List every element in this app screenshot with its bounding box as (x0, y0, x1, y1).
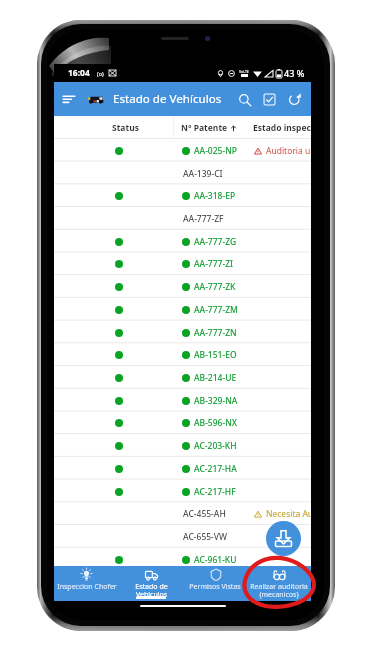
staticText: AA-777-ZI (194, 258, 234, 270)
staticText: 43 % (284, 67, 305, 79)
staticText: AA-025-NP (194, 145, 237, 157)
button[interactable]: Actualizar (282, 87, 307, 112)
staticText: AA-777-ZM (194, 304, 238, 316)
button[interactable]: AC-203-KH (54, 434, 311, 457)
staticText: (o) (97, 70, 104, 77)
staticText: AC-217-HF (194, 486, 236, 498)
staticText: AA-777-ZG (194, 236, 237, 248)
staticText: Status (112, 122, 139, 134)
button[interactable]: AA-777-ZF (54, 207, 311, 230)
staticText: AA-777-ZK (194, 281, 236, 293)
button[interactable]: Estado de Vehiculos (119, 566, 183, 601)
staticText: 16:04 (68, 67, 90, 79)
button[interactable]: AC-217-HA (54, 457, 311, 480)
button[interactable]: AB-151-EO (54, 343, 311, 366)
staticText: AA-139-CI (183, 168, 223, 180)
button[interactable]: AA-777-ZI (54, 252, 311, 275)
button[interactable]: AA-318-EP (54, 184, 311, 207)
button[interactable]: Permisos Vistas (183, 566, 247, 601)
button[interactable]: Inspeccion Chofer (54, 566, 119, 601)
staticText: Estado de Vehiculos (135, 582, 168, 599)
button[interactable]: AA-139-CI (54, 162, 311, 185)
button[interactable]: AC-655-VW (54, 525, 311, 548)
staticText: Estado de Vehículos (113, 91, 222, 107)
staticText: AB-596-NX (194, 417, 237, 429)
staticText: AB-214-UE (194, 372, 237, 384)
staticText: AC-655-VW (183, 531, 228, 543)
staticText: AC-455-AH (183, 508, 226, 520)
button[interactable]: AA-777-ZG (54, 230, 311, 253)
staticText: AA-318-EP (194, 190, 236, 202)
button[interactable]: AB-329-NA (54, 389, 311, 412)
staticText: Permisos Vistas (189, 582, 241, 592)
button[interactable]: Realizar auditoria (mecanicos) (247, 566, 311, 601)
staticText: AB-151-EO (194, 349, 237, 361)
button[interactable]: Buscar (232, 87, 257, 112)
staticText: AC-203-KH (194, 440, 237, 452)
staticText: VoLTE (239, 69, 249, 74)
staticText: Inspeccion Chofer (57, 582, 117, 592)
button[interactable]: AA-777-ZK (54, 275, 311, 298)
staticText: Estado inspeccion (253, 122, 311, 134)
button[interactable]: AC-961-KU (54, 548, 311, 566)
staticText: Auditoria urgente (266, 145, 311, 157)
staticText: AC-217-HA (194, 463, 237, 475)
staticText: AB-329-NA (194, 395, 238, 407)
staticText: Necesita Auditoria (266, 508, 311, 520)
button[interactable]: AA-025-NP (54, 139, 311, 162)
button[interactable]: AC-455-AH (54, 502, 311, 525)
button[interactable]: Descargar (266, 521, 301, 556)
staticText: Realizar auditoria (mecanicos) (250, 582, 308, 599)
button[interactable]: AA-777-ZN (54, 321, 311, 344)
button[interactable]: AC-217-HF (54, 480, 311, 503)
staticText: AC-961-KU (194, 554, 237, 566)
button[interactable]: AA-777-ZM (54, 298, 311, 321)
staticText: AA-777-ZF (183, 213, 224, 225)
button[interactable]: AB-596-NX (54, 411, 311, 434)
button[interactable]: Menú (57, 87, 81, 111)
staticText: N° Patente (181, 122, 228, 134)
staticText: AA-777-ZN (194, 327, 237, 339)
button[interactable]: Seleccionar (257, 87, 282, 112)
button[interactable]: AB-214-UE (54, 366, 311, 389)
